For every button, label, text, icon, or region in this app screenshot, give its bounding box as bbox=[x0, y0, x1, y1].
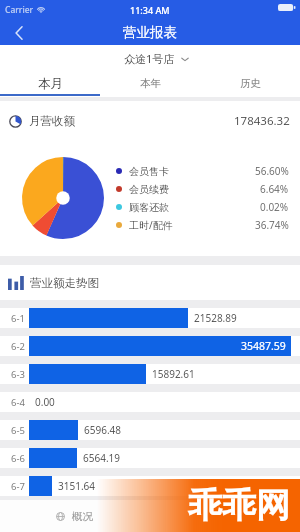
staticText: 工时/配件 bbox=[129, 218, 173, 232]
staticText: Carrier bbox=[5, 4, 34, 16]
staticText: 6-6 bbox=[11, 452, 25, 465]
staticText: 众途1号店 bbox=[124, 51, 175, 66]
staticText: 0.00 bbox=[35, 395, 55, 409]
staticText: 6-5 bbox=[11, 424, 25, 437]
staticText: 15892.61 bbox=[152, 367, 195, 381]
staticText: 0.02% bbox=[260, 200, 289, 214]
staticText: 历史 bbox=[240, 77, 261, 90]
staticText: 6.64% bbox=[260, 182, 289, 196]
staticText: 会员续费 bbox=[129, 183, 169, 196]
button[interactable]: 本月 bbox=[0, 72, 100, 97]
staticText: 6564.19 bbox=[83, 451, 120, 465]
staticText: 会员售卡 bbox=[129, 165, 169, 178]
staticText: 6-7 bbox=[11, 480, 25, 493]
staticText: 顾客还款 bbox=[129, 201, 169, 214]
staticText: 35487.59 bbox=[241, 339, 286, 353]
staticText: 6-4 bbox=[11, 396, 25, 409]
button[interactable]: 众途1号店 bbox=[0, 45, 300, 72]
staticText: 6-3 bbox=[11, 368, 25, 381]
button[interactable]: 概况 bbox=[56, 510, 93, 523]
staticText: 月营收额 bbox=[29, 114, 75, 128]
staticText: 11:34 AM bbox=[130, 4, 170, 16]
button[interactable]: 本年 bbox=[100, 72, 200, 97]
staticText: 营业额走势图 bbox=[30, 276, 99, 290]
staticText: 营业报表 bbox=[123, 24, 177, 41]
staticText: 本月 bbox=[38, 76, 63, 92]
staticText: 36.74% bbox=[255, 218, 289, 232]
staticText: 56.60% bbox=[255, 164, 289, 178]
staticText: 178436.32 bbox=[234, 113, 290, 129]
staticText: 乖乖网 bbox=[188, 484, 290, 527]
staticText: 21528.89 bbox=[194, 311, 237, 325]
staticText: 本年 bbox=[140, 77, 161, 90]
staticText: 概况 bbox=[72, 510, 93, 523]
button[interactable]: 历史 bbox=[200, 72, 300, 97]
staticText: 6-1 bbox=[11, 312, 25, 325]
staticText: 6596.48 bbox=[84, 423, 121, 437]
staticText: 3151.64 bbox=[58, 479, 95, 493]
staticText: 6-2 bbox=[11, 340, 25, 353]
button[interactable]: Back bbox=[0, 20, 36, 45]
